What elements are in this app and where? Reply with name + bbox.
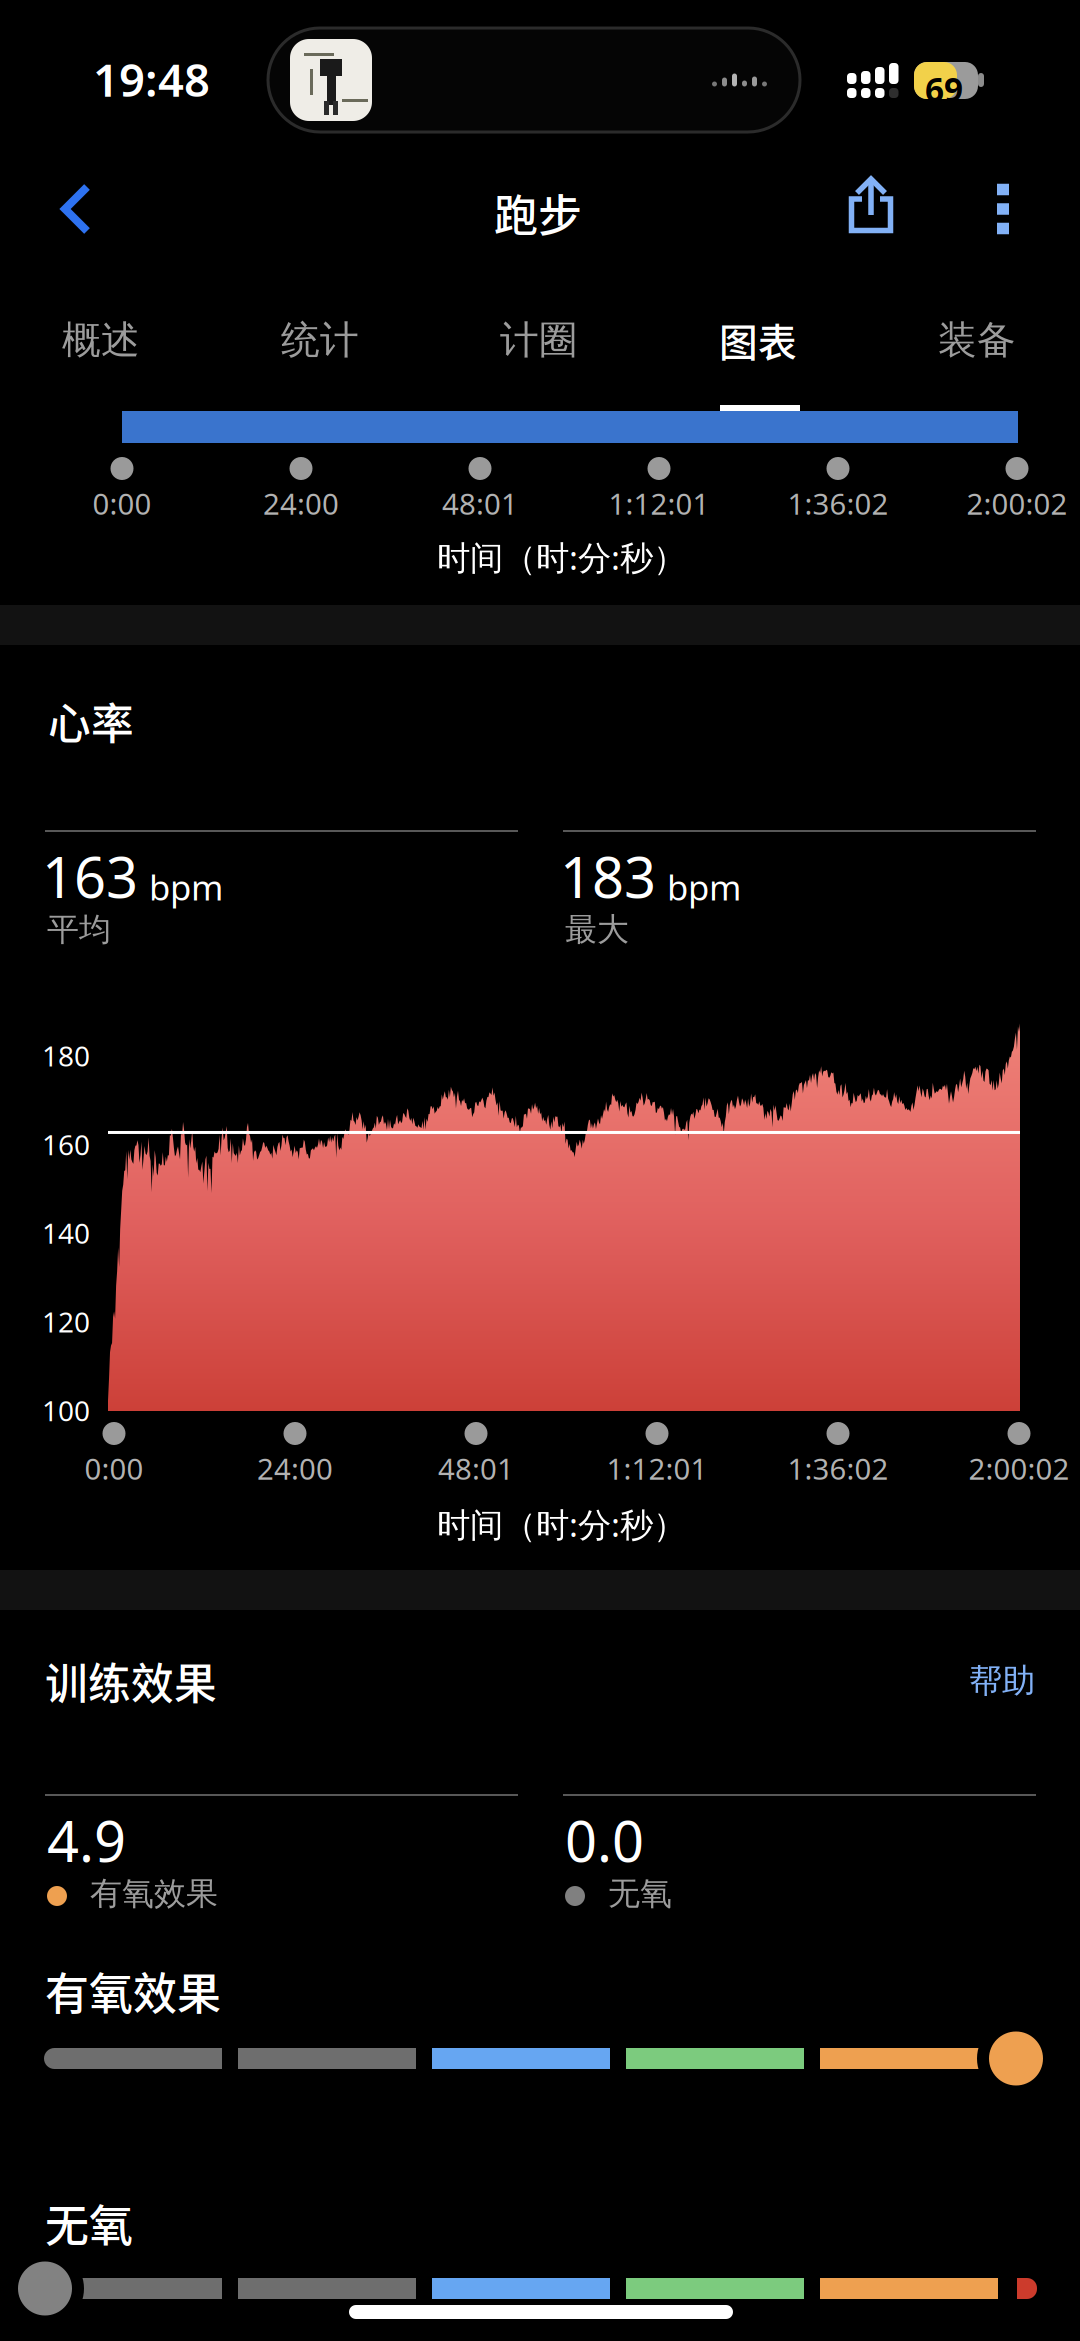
staticText: 装备 [938,316,1016,364]
staticText: 0:00 [92,484,151,523]
staticText: 跑步 [494,181,582,245]
staticText: 180 [42,1037,90,1074]
staticText: 无氧 [608,1874,672,1913]
staticText: 帮助 [969,1660,1035,1701]
staticText: 1:12:01 [608,484,709,523]
button[interactable]: 帮助 [925,1653,1035,1709]
button[interactable]: 计圈 [431,284,647,396]
staticText: 163 [42,839,138,913]
staticText: 24:00 [257,1449,333,1488]
button[interactable]: 概述 [0,284,209,396]
staticText: bpm [667,864,741,910]
staticText: 时间（时:分:秒） [437,535,686,579]
staticText: 24:00 [263,484,339,523]
staticText: 有氧效果 [90,1874,218,1913]
staticText: 概述 [62,316,140,364]
staticText: 100 [42,1392,90,1429]
staticText: 训练效果 [45,1650,217,1712]
staticText: 160 [42,1126,90,1163]
staticText: 计圈 [500,316,578,364]
staticText: 时间（时:分:秒） [437,1502,686,1546]
button[interactable]: More options [955,150,1051,268]
staticText: 140 [42,1214,90,1252]
staticText: 有氧效果 [45,1959,221,2023]
button[interactable]: 装备 [869,284,1080,396]
staticText: 图表 [719,312,797,368]
staticText: 2:00:02 [966,484,1067,523]
staticText: 0:00 [84,1449,143,1488]
staticText: 0.0 [565,1803,644,1877]
staticText: 69 [925,67,963,111]
staticText: 1:12:01 [606,1449,707,1488]
staticText: bpm [149,864,223,910]
button[interactable]: Back [0,148,126,266]
button[interactable]: 图表 [650,284,866,396]
staticText: 183 [560,839,656,913]
button[interactable]: Share [812,149,928,267]
staticText: 48:01 [442,484,518,523]
staticText: 4.9 [47,1803,126,1877]
staticText: 2:00:02 [968,1449,1069,1488]
staticText: 120 [42,1303,90,1340]
staticText: 最大 [565,910,629,949]
staticText: 1:36:02 [787,1449,888,1488]
staticText: 无氧 [45,2191,133,2255]
button[interactable]: 统计 [212,284,428,396]
staticText: 48:01 [438,1449,514,1488]
staticText: 平均 [47,910,111,949]
staticText: 心率 [48,690,134,752]
staticText: 统计 [281,316,359,364]
staticText: 1:36:02 [787,484,888,523]
staticText: 19:48 [93,49,210,109]
